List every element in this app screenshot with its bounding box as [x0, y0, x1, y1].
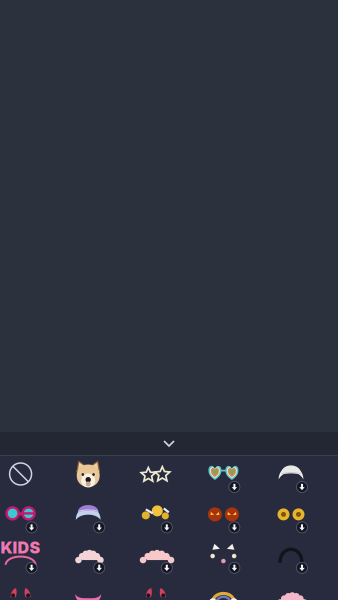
button[interactable]: Moustache [54, 577, 122, 600]
button[interactable]: Pumpkins [190, 496, 257, 537]
staticText: KIDS [1, 538, 41, 557]
button[interactable]: Devil horns [0, 577, 54, 600]
button[interactable]: No effect [0, 456, 54, 496]
button[interactable]: Rose crown [122, 537, 190, 577]
button[interactable]: Flowers [257, 496, 325, 537]
button[interactable]: Round glasses [0, 496, 54, 537]
button[interactable]: Red horns [122, 577, 190, 600]
button[interactable]: Dog face [54, 456, 122, 496]
button[interactable]: Flower crown [54, 537, 122, 577]
button[interactable]: Collapse effects [0, 432, 338, 455]
button[interactable]: Pink crown [257, 577, 325, 600]
button[interactable]: Rainbow [190, 577, 257, 600]
button[interactable]: Sparkle ears [190, 537, 257, 577]
button[interactable]: Stars [122, 456, 190, 496]
button[interactable]: Black band [257, 537, 325, 577]
button[interactable]: White cap [257, 456, 325, 496]
button[interactable]: Money [122, 496, 190, 537]
button[interactable]: Purple cap [54, 496, 122, 537]
button[interactable]: Kids [0, 537, 54, 577]
button[interactable]: Heart glasses [190, 456, 257, 496]
